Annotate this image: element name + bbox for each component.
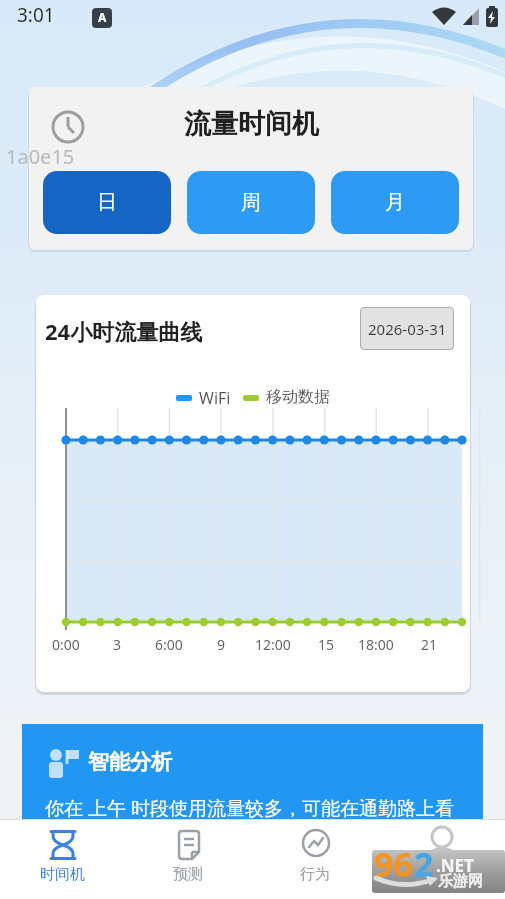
staticText: WiFi: [199, 387, 231, 409]
staticText: 96: [374, 850, 413, 884]
staticText: 18:00: [358, 635, 394, 654]
staticText: 乐游网: [438, 872, 483, 891]
button[interactable]: 预测: [126, 820, 252, 899]
staticText: A: [98, 9, 107, 25]
staticText: 月: [385, 190, 405, 215]
staticText: 日: [97, 190, 117, 215]
staticText: 9: [217, 635, 226, 654]
staticText: 3:01: [17, 2, 55, 28]
staticText: 1a0e15: [6, 143, 75, 170]
staticText: 6:00: [155, 635, 183, 654]
staticText: 2026-03-31: [368, 319, 447, 339]
staticText: 预测: [173, 865, 203, 884]
staticText: 24小时流量曲线: [45, 316, 203, 346]
staticText: 0:00: [52, 635, 80, 654]
staticText: .NET: [436, 854, 474, 877]
staticText: 智能分析: [88, 749, 172, 775]
button[interactable]: 2026-03-31: [360, 307, 454, 350]
staticText: 行为: [300, 865, 330, 884]
staticText: 流量时间机: [184, 107, 319, 141]
staticText: 你在 上午 时段使用流量较多，可能在通勤路上看: [45, 795, 454, 821]
button[interactable]: 时间机: [0, 820, 126, 899]
staticText: 2: [414, 850, 434, 884]
button[interactable]: 周: [187, 171, 315, 234]
staticText: 我的: [426, 865, 456, 884]
button[interactable]: 行为: [252, 820, 378, 899]
staticText: 移动数据: [266, 387, 330, 407]
staticText: 周: [241, 190, 261, 215]
staticText: 3: [113, 635, 122, 654]
staticText: 21: [421, 635, 438, 654]
staticText: 时间机: [40, 865, 85, 884]
staticText: 12:00: [255, 635, 291, 654]
staticText: 15: [318, 635, 335, 654]
button[interactable]: 月: [331, 171, 459, 234]
button[interactable]: 我的: [378, 820, 505, 899]
button[interactable]: 日: [43, 171, 171, 234]
